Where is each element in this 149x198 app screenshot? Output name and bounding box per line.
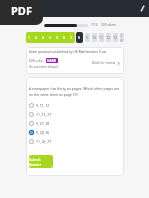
- staticText: 7/14: [91, 23, 98, 27]
- staticText: 11, 26, 27: [36, 139, 52, 144]
- staticText: 10: [92, 35, 97, 40]
- staticText: 4: [49, 35, 52, 40]
- button[interactable]: 9, 11, 12: [29, 101, 121, 110]
- staticText: Mark for review: [92, 61, 116, 65]
- button[interactable]: 9, 27, 28: [29, 119, 121, 128]
- staticText: 13: [113, 35, 118, 40]
- staticText: 9, 11, 12: [36, 103, 50, 108]
- staticText: 11: [99, 35, 104, 40]
- button[interactable]: 11, 26, 27: [29, 137, 121, 146]
- staticText: 9, 27, 28: [36, 121, 50, 126]
- staticText: 9: [86, 35, 89, 40]
- button[interactable]: 5: [54, 32, 61, 43]
- button[interactable]: PDF: [0, 0, 43, 25]
- button[interactable]: Edit: [136, 2, 148, 14]
- staticText: 2: [35, 35, 38, 40]
- staticText: Difficulty:: [29, 59, 44, 63]
- staticText: A newspaper has thirty-six pages. Which …: [29, 86, 121, 97]
- staticText: 7: [70, 35, 73, 40]
- staticText: HARD: [47, 59, 57, 63]
- button[interactable]: 1: [26, 32, 33, 43]
- button[interactable]: 11: [99, 33, 104, 42]
- button[interactable]: Submit Answer: [29, 155, 53, 168]
- button[interactable]: 12: [106, 33, 111, 42]
- button[interactable]: 4: [47, 32, 54, 43]
- staticText: 3: [42, 35, 45, 40]
- staticText: 9, 28, 36: [36, 130, 50, 135]
- staticText: 8: [78, 35, 81, 40]
- staticText: Exam questions published by UK Mathemati…: [29, 50, 107, 54]
- button[interactable]: Mark for review: [92, 61, 120, 65]
- staticText: 1: [28, 35, 31, 40]
- staticText: 14: [120, 33, 124, 42]
- button[interactable]: 9, 28, 36: [29, 128, 121, 137]
- staticText: PDF: [11, 3, 32, 18]
- button[interactable]: 2: [33, 32, 40, 43]
- button[interactable]: 14: [120, 33, 124, 42]
- button[interactable]: 10: [92, 33, 97, 42]
- button[interactable]: 13: [113, 33, 118, 42]
- staticText: 6: [63, 35, 66, 40]
- staticText: 11, 12, 27: [36, 112, 52, 117]
- button[interactable]: 11, 12, 27: [29, 110, 121, 119]
- staticText: 5: [56, 35, 59, 40]
- button[interactable]: 6: [61, 32, 68, 43]
- staticText: 12: [106, 35, 111, 40]
- staticText: 50% done: [101, 23, 116, 27]
- button[interactable]: 8: [76, 32, 83, 43]
- button[interactable]: 3: [40, 32, 47, 43]
- button[interactable]: 9: [85, 33, 90, 42]
- staticText: No calculator allowed: [29, 65, 59, 69]
- staticText: Submit Answer: [29, 157, 53, 167]
- button[interactable]: 7: [68, 32, 75, 43]
